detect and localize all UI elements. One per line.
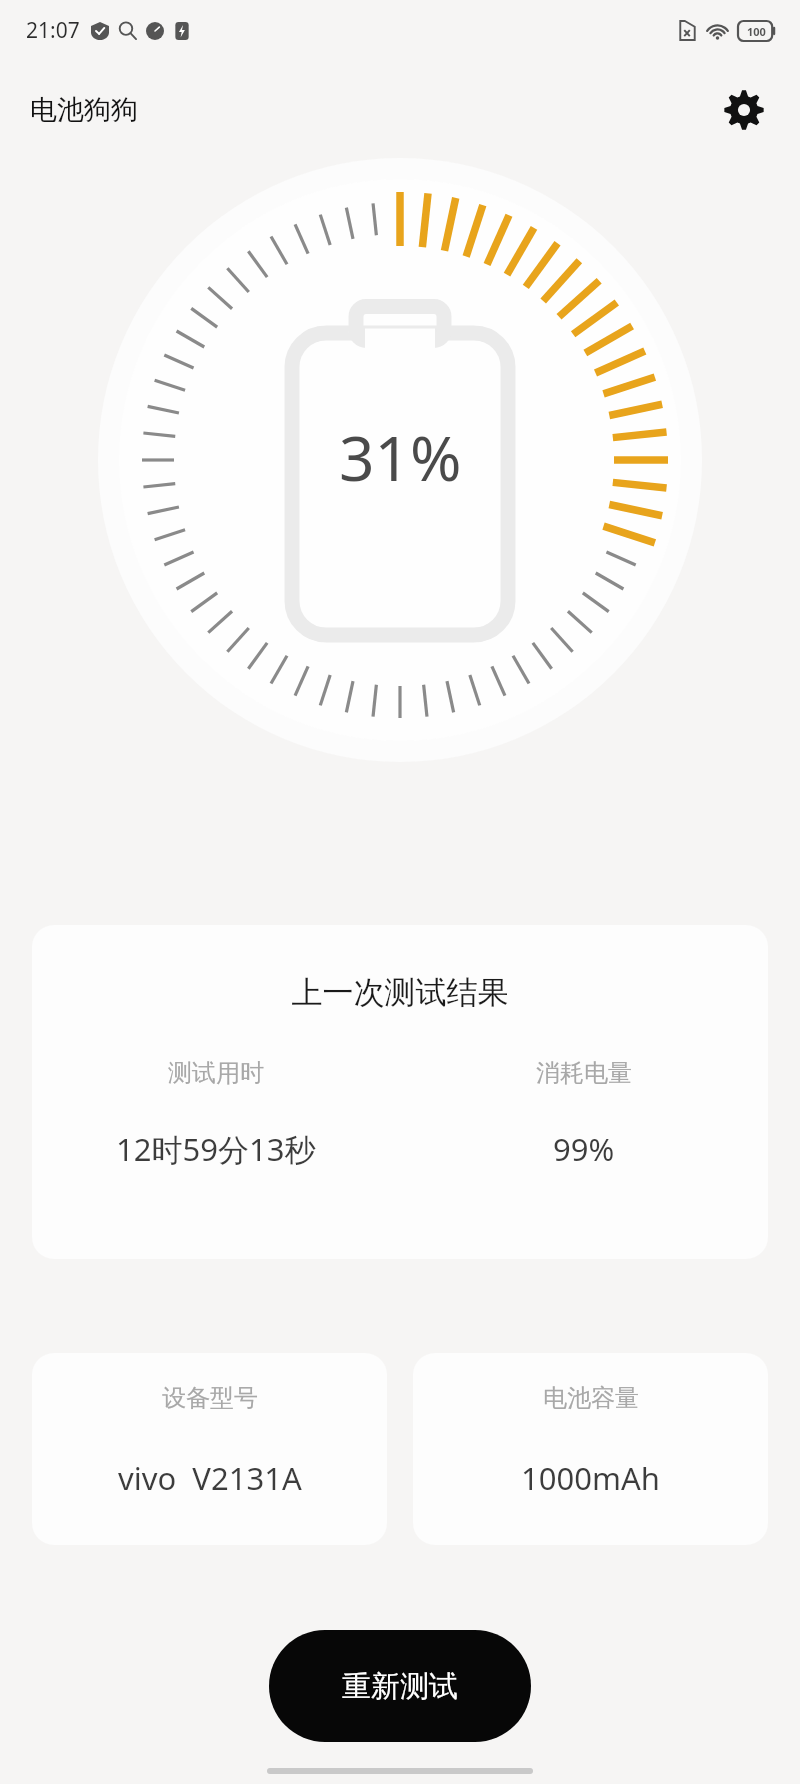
staticText: 电池狗狗 [30, 93, 138, 127]
button[interactable]: 上一次测试结果 [32, 925, 768, 1259]
button[interactable]: 电池容量 [413, 1353, 768, 1545]
staticText: 测试用时 [168, 1058, 264, 1088]
button[interactable]: 设备型号 [32, 1353, 387, 1545]
staticText: 上一次测试结果 [32, 973, 768, 1012]
staticText: 重新测试 [342, 1668, 458, 1705]
staticText: 12时59分13秒 [116, 1128, 316, 1170]
staticText: 电池容量 [543, 1383, 639, 1413]
staticText: 1000mAh [521, 1457, 660, 1499]
staticText: 31% [339, 415, 462, 499]
staticText: vivo V2131A [118, 1457, 302, 1499]
button[interactable]: 重新测试 [269, 1630, 531, 1742]
staticText: 设备型号 [162, 1383, 258, 1413]
staticText: 99% [553, 1128, 615, 1170]
staticText: 21:07 [26, 16, 80, 45]
staticText: 消耗电量 [536, 1058, 632, 1088]
staticText: 100 [747, 24, 766, 39]
button[interactable]: Settings [716, 82, 772, 138]
